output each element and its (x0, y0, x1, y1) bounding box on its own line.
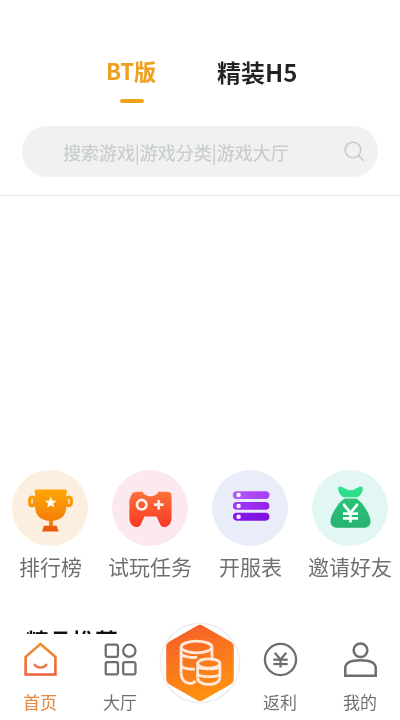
staticText: 搜索游戏|游戏分类|游戏大厅 (63, 139, 289, 165)
staticText: 邀请好友 (308, 551, 392, 581)
button[interactable]: 搜索游戏|游戏分类|游戏大厅 (22, 126, 378, 177)
button[interactable]: 精装H5 (203, 54, 312, 89)
button[interactable]: 排行榜 (0, 470, 100, 581)
button[interactable]: 试玩任务 (100, 470, 200, 581)
button[interactable]: 开服表 (200, 470, 300, 581)
staticText: 返利 (263, 689, 297, 714)
button[interactable]: 返利 (240, 634, 320, 720)
staticText: 大厅 (103, 689, 137, 714)
staticText: 精品推荐 (26, 623, 118, 656)
button[interactable]: 我的 (320, 634, 400, 720)
staticText: 排行榜 (19, 551, 82, 581)
button[interactable]: 游戏币 (160, 623, 240, 703)
button[interactable]: 邀请好友 (300, 470, 400, 581)
staticText: 试玩任务 (108, 551, 192, 581)
staticText: 首页 (23, 689, 57, 714)
staticText: BT版 (106, 54, 157, 86)
staticText: 开服表 (219, 551, 282, 581)
button[interactable]: BT版 (92, 54, 171, 103)
button[interactable]: 首页 (0, 634, 80, 720)
staticText: 精装H5 (217, 54, 298, 89)
button[interactable]: 大厅 (80, 634, 160, 720)
staticText: 我的 (343, 689, 377, 714)
